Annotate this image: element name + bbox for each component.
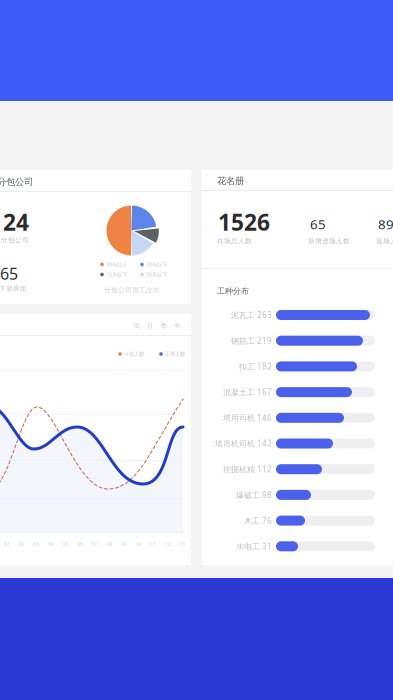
staticText: 下游班组 [0,284,27,293]
staticText: 01 [4,540,10,548]
staticText: 挖掘机精 112 [223,464,272,474]
staticText: 爆破工 98 [236,490,272,500]
staticText: 钢筋工 219 [231,335,272,346]
staticText: 65 [310,215,326,233]
staticText: 24 [3,207,29,237]
staticText: 正常人数 [165,351,185,357]
staticText: 04 [48,540,54,548]
staticText: 年 [174,322,181,330]
staticText: 05 [62,540,68,548]
staticText: 计划人数 [124,351,144,357]
staticText: 30天以上 [106,261,127,268]
staticText: 泥瓦工 263 [231,310,272,320]
staticText: 花名册 [217,175,244,187]
staticText: 混凝土工 167 [223,387,272,397]
staticText: 30天以下 [146,261,167,268]
staticText: 分包公司 [1,236,29,244]
staticText: 07 [92,540,98,548]
staticText: 塔用司机 146 [223,412,272,423]
staticText: 扣工 182 [239,361,272,372]
staticText: 分包公司员工占比 [104,286,160,294]
staticText: 15天以下 [106,271,127,278]
staticText: 89 [378,215,393,233]
staticText: 新增进场人数 [308,237,350,245]
staticText: 06 [77,540,83,548]
staticText: 塔吊机司机 142 [215,438,272,449]
staticText: 1526 [218,207,270,237]
staticText: 65 [0,263,18,284]
staticText: 周 [133,322,140,330]
staticText: 10 [135,540,141,548]
staticText: 13 [179,540,185,548]
staticText: 退场人数 [376,237,393,245]
staticText: 12 [165,540,171,548]
staticText: 木工 76 [244,515,272,526]
staticText: 季 [160,322,167,330]
staticText: 水电工 31 [236,541,272,552]
staticText: 09 [121,540,127,548]
staticText: 08 [106,540,112,548]
staticText: 在场总人数 [217,237,252,245]
staticText: 20天以下 [146,271,167,278]
staticText: 11 [150,540,156,548]
staticText: 03 [33,540,39,548]
staticText: 工种分布 [217,286,249,296]
staticText: 分包公司 [0,176,33,188]
staticText: 月 [146,322,153,330]
staticText: 02 [19,540,25,548]
